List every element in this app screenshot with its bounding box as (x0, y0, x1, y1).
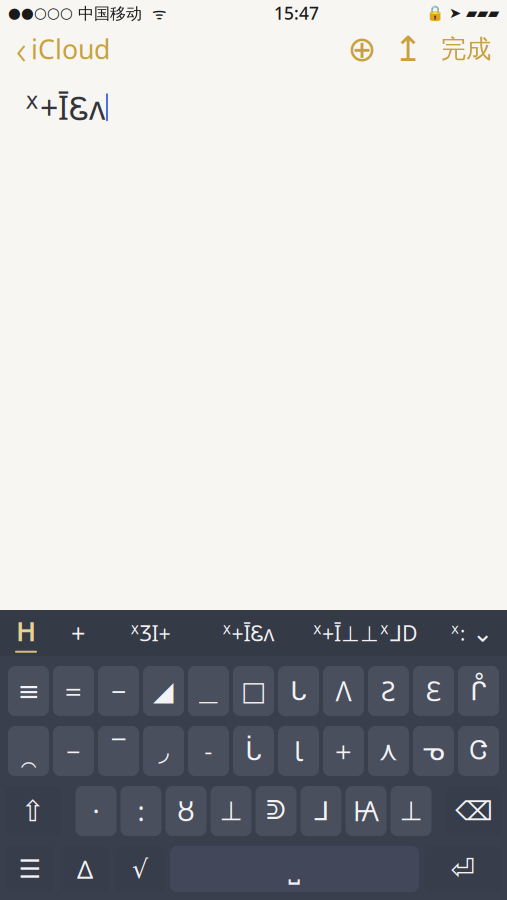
staticText: · (92, 793, 99, 829)
staticText: ⊕ (347, 29, 376, 69)
staticText: ᕽ+ĪᏋʌ (221, 619, 274, 647)
button[interactable]: Add (52, 611, 104, 655)
button[interactable]: ◞ (143, 726, 184, 776)
staticText: Ꙅ (381, 673, 396, 709)
staticText: ⎵ (288, 855, 300, 883)
button[interactable]: ᕽ+ĪᏋʌ (196, 611, 300, 655)
button[interactable]: Ꮳ (458, 726, 499, 776)
staticText: + (71, 616, 85, 650)
staticText: ᕲ (266, 798, 286, 824)
staticText: ●●○○○ (8, 5, 73, 21)
staticText: ＿ (195, 675, 222, 707)
staticText: : (137, 793, 144, 829)
staticText: Ɛ (425, 673, 441, 709)
button[interactable]: ᕽƷI+ (104, 611, 196, 655)
button[interactable]: Ꙅ (368, 666, 409, 716)
staticText: Ꮳ (469, 738, 487, 764)
button[interactable]: Ꙗ (345, 786, 386, 836)
staticText: ˗ (204, 733, 212, 769)
staticText: ᕽ+ĪᏋʌ (24, 86, 105, 128)
button[interactable]: ᒐ (278, 666, 319, 716)
button[interactable]: ＝ (53, 666, 94, 716)
button[interactable]: ᕽ+Ī⊥⊥ᕽᒧD (300, 611, 430, 655)
staticText: iCloud (31, 31, 110, 67)
staticText: ⏎ (450, 852, 475, 886)
staticText: Ȣ (177, 793, 195, 829)
button[interactable]: Keyboard settings (5, 846, 55, 892)
button[interactable]: ‹ (6, 27, 120, 71)
staticText: Ɩ (294, 733, 303, 769)
staticText: ᒐ (290, 676, 307, 706)
button[interactable]: ⋏ (368, 726, 409, 776)
staticText: ‹ (16, 22, 27, 75)
staticText: ≡ (17, 676, 39, 706)
staticText: ⇧ (20, 794, 45, 828)
staticText: 完成 (441, 33, 491, 64)
button[interactable]: ⊥ (390, 786, 431, 836)
staticText: Λ (335, 673, 351, 709)
staticText: ᕽ: (450, 620, 465, 646)
button[interactable]: − (98, 666, 139, 716)
staticText: ⁔ (20, 733, 36, 769)
button[interactable]: Space (170, 846, 419, 892)
button[interactable]: Return (424, 846, 502, 892)
staticText: － (60, 735, 87, 767)
button[interactable]: ᓀ (413, 726, 454, 776)
button[interactable]: Share (385, 27, 431, 71)
staticText: ᒧ (313, 796, 329, 826)
staticText: □ (241, 676, 266, 706)
staticText: ⊥ (219, 796, 242, 826)
button[interactable]: ᒧ (300, 786, 341, 836)
button[interactable]: Add People (339, 27, 385, 71)
button[interactable]: ˗ (188, 726, 229, 776)
button[interactable]: ≡ (8, 666, 49, 716)
staticText: ⌫ (455, 796, 493, 826)
button[interactable]: ᒊ (458, 666, 499, 716)
staticText: ᒊ (470, 676, 487, 706)
staticText: ＝ (60, 675, 87, 707)
staticText: ᕽƷI+ (129, 619, 170, 647)
staticText: ◞ (158, 736, 168, 766)
button[interactable]: · (75, 786, 116, 836)
staticText: ⋏ (378, 736, 398, 766)
button[interactable]: Ɛ (413, 666, 454, 716)
staticText: 15:47 (274, 1, 319, 24)
staticText: ⊥ (399, 796, 422, 826)
button[interactable]: Ɩ (278, 726, 319, 776)
button[interactable]: ⁔ (8, 726, 49, 776)
staticText: Ꙗ (353, 793, 379, 829)
staticText: H (16, 613, 36, 649)
button[interactable]: ‾ (98, 726, 139, 776)
button[interactable]: 完成 (431, 27, 501, 71)
button[interactable]: － (53, 726, 94, 776)
staticText: ᒑ (245, 736, 262, 766)
staticText: Δ (77, 852, 93, 886)
staticText: √ (132, 855, 148, 883)
button[interactable]: □ (233, 666, 274, 716)
button[interactable]: Shift (5, 786, 61, 836)
button[interactable]: Symbols (60, 846, 110, 892)
button[interactable]: Math (115, 846, 165, 892)
staticText: ◢ (153, 676, 174, 706)
staticText: ☰ (18, 855, 41, 883)
staticText: − (111, 673, 126, 709)
staticText: ᓀ (422, 736, 445, 766)
button[interactable]: Λ (323, 666, 364, 716)
staticText: ‾ (112, 733, 125, 769)
staticText: 🔒 ➤ ▰▰▰ (426, 5, 499, 21)
button[interactable]: : (120, 786, 161, 836)
button[interactable]: ᒑ (233, 726, 274, 776)
staticText: ↥ (393, 29, 422, 69)
button[interactable]: ＋ (323, 726, 364, 776)
staticText: ᕽ+Ī⊥⊥ᕽᒧD (312, 619, 418, 647)
button[interactable]: ＿ (188, 666, 229, 716)
button[interactable]: Delete (446, 786, 502, 836)
button[interactable]: Input mode (0, 611, 52, 655)
button[interactable]: ᕲ (255, 786, 296, 836)
staticText: ⌄ (472, 619, 493, 647)
staticText: 中国移动 ᯤ (73, 2, 167, 24)
button[interactable]: Collapse suggestions (450, 611, 507, 655)
button[interactable]: Ȣ (165, 786, 206, 836)
button[interactable]: ⊥ (210, 786, 251, 836)
button[interactable]: ◢ (143, 666, 184, 716)
